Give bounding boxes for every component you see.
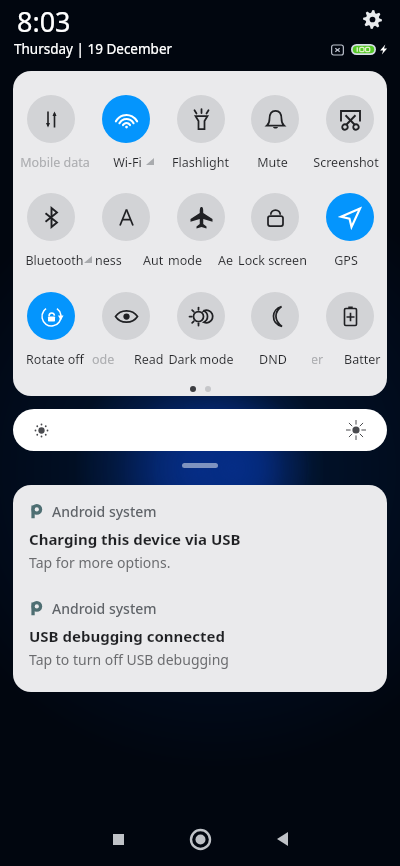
staticText: USB debugging connected xyxy=(29,626,225,646)
button[interactable] xyxy=(163,95,238,167)
staticText: ness xyxy=(95,252,122,268)
button[interactable] xyxy=(88,95,163,167)
staticText: Dark mode xyxy=(168,351,234,368)
button[interactable] xyxy=(237,193,312,265)
button[interactable]: Home xyxy=(172,812,228,866)
button[interactable] xyxy=(13,193,88,265)
button[interactable] xyxy=(312,95,387,167)
staticText: mode xyxy=(168,252,202,268)
staticText: Flashlight xyxy=(172,154,229,171)
button[interactable]: Back xyxy=(254,812,310,866)
staticText: Bluetooth xyxy=(25,252,84,269)
button[interactable]: Recent apps xyxy=(90,812,146,866)
staticText: Rotate off xyxy=(26,351,84,368)
staticText: Wi-Fi xyxy=(113,154,142,171)
staticText: Mobile data xyxy=(20,154,90,171)
staticText: DND xyxy=(259,351,287,368)
button[interactable] xyxy=(88,193,163,265)
staticText: Lock screen xyxy=(238,252,307,269)
staticText: Ae xyxy=(218,252,234,268)
staticText: Tap for more options. xyxy=(29,553,171,572)
button[interactable] xyxy=(237,95,312,167)
staticText: Android system xyxy=(52,502,157,521)
staticText: Tap to turn off USB debugging xyxy=(29,650,229,669)
button[interactable] xyxy=(13,95,88,167)
staticText: ode xyxy=(92,351,115,367)
button[interactable] xyxy=(13,292,88,364)
button[interactable]: Android system xyxy=(13,485,387,582)
button[interactable]: Android system xyxy=(13,582,387,679)
staticText: Charging this device via USB xyxy=(29,529,241,549)
button[interactable] xyxy=(88,292,163,364)
staticText: 8:03 xyxy=(17,3,71,40)
staticText: er xyxy=(312,351,324,367)
button[interactable]: Brightness xyxy=(13,409,387,451)
staticText: Aut xyxy=(143,252,163,268)
staticText: Android system xyxy=(52,599,157,618)
button[interactable] xyxy=(163,193,238,265)
staticText: Thursday | 19 December xyxy=(14,40,173,58)
staticText: Mute xyxy=(257,154,288,171)
button[interactable] xyxy=(312,193,387,265)
button[interactable] xyxy=(163,292,238,364)
staticText: Screenshot xyxy=(313,154,379,171)
staticText: GPS xyxy=(334,252,358,269)
staticText: Read xyxy=(134,351,163,367)
button[interactable]: Settings xyxy=(358,5,386,33)
staticText: Batter xyxy=(344,351,381,367)
button[interactable] xyxy=(237,292,312,364)
button[interactable] xyxy=(312,292,387,364)
